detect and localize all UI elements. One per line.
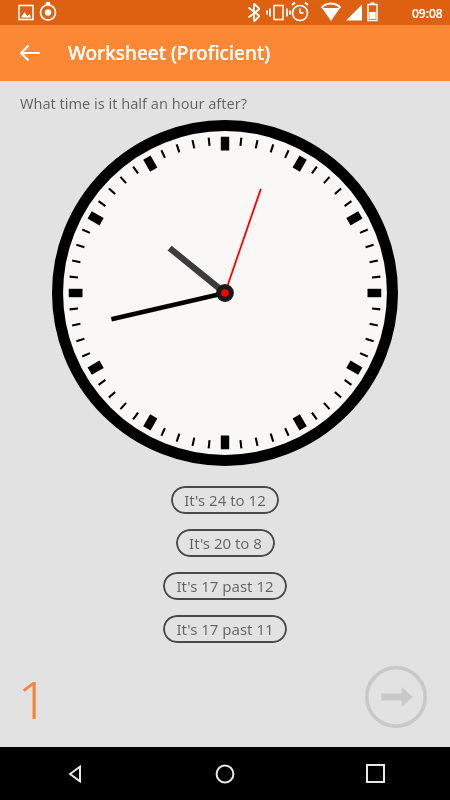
button[interactable]: It's 20 to 8: [176, 529, 275, 557]
button[interactable]: Recents: [300, 747, 450, 800]
button[interactable]: Next: [364, 665, 428, 729]
button[interactable]: It's 17 past 12: [163, 572, 287, 600]
button[interactable]: Back: [8, 31, 52, 75]
staticText: 1: [18, 663, 48, 734]
button[interactable]: Back: [0, 747, 150, 800]
staticText: What time is it half an hour after?: [20, 93, 247, 113]
button[interactable]: Home: [150, 747, 300, 800]
staticText: Worksheet (Proficient): [68, 40, 271, 66]
staticText: It's 24 to 12: [184, 490, 266, 510]
staticText: It's 20 to 8: [189, 533, 262, 553]
button[interactable]: It's 17 past 11: [163, 615, 287, 643]
staticText: 09:08: [412, 5, 443, 21]
staticText: It's 17 past 11: [176, 619, 274, 639]
staticText: It's 17 past 12: [176, 576, 274, 596]
button[interactable]: It's 24 to 12: [171, 486, 279, 514]
